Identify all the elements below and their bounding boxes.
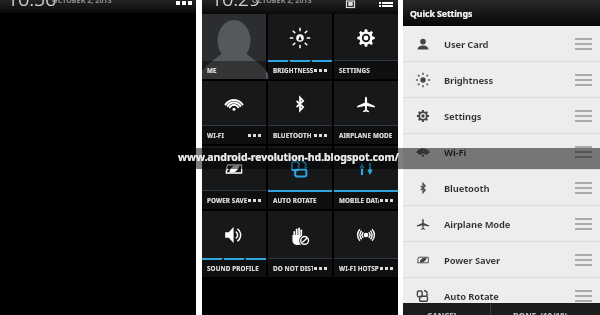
staticText: BLUETOOTH <box>273 131 313 140</box>
button[interactable]: BRIGHTNESS <box>268 14 332 79</box>
staticText: SETTINGS <box>339 66 395 75</box>
staticText: DONE (10/10) <box>513 310 568 315</box>
button[interactable]: Auto Rotate <box>402 278 600 314</box>
staticText: Settings <box>444 110 482 123</box>
button[interactable]: Settings <box>402 98 600 134</box>
button[interactable]: Airplane Mode <box>402 206 600 242</box>
button[interactable]: SOUND PROFILE <box>202 211 266 277</box>
staticText: Power Saver <box>444 254 501 267</box>
button[interactable]: Brightness <box>402 62 600 98</box>
button[interactable]: Power Saver <box>402 242 600 278</box>
staticText: WI-FI HOTSPOT <box>339 264 379 273</box>
button[interactable]: Bluetooth <box>402 170 600 206</box>
button[interactable]: AUTO ROTATE <box>268 146 332 209</box>
button[interactable]: BLUETOOTH <box>268 81 332 144</box>
staticText: Auto Rotate <box>444 290 499 303</box>
staticText: OCTOBER 2, 2013 <box>52 0 112 6</box>
button[interactable]: POWER SAVER <box>202 146 266 209</box>
staticText: AUTO ROTATE <box>273 196 329 205</box>
button[interactable]: MOBILE DATA <box>334 146 398 209</box>
staticText: www.android-revolution-hd.blogspot.com/ <box>178 150 399 164</box>
staticText: WI-FI <box>207 131 247 140</box>
button[interactable]: WI-FI HOTSPOT <box>334 211 398 277</box>
staticText: Airplane Mode <box>444 218 511 231</box>
staticText: Wi-Fi <box>444 146 467 159</box>
staticText: POWER SAVER <box>207 196 247 205</box>
staticText: Brightness <box>444 74 494 87</box>
button[interactable]: Screenshot <box>346 0 355 8</box>
staticText: ME <box>207 66 263 75</box>
staticText: AIRPLANE MODE <box>339 131 395 140</box>
staticText: OCTOBER 2, 2013 <box>252 0 312 6</box>
button[interactable]: More options <box>176 1 192 5</box>
button[interactable] <box>491 303 600 315</box>
staticText: MOBILE DATA <box>339 196 379 205</box>
staticText: BRIGHTNESS <box>273 66 313 75</box>
button[interactable]: User Card <box>402 26 600 62</box>
button[interactable]: WI-FI <box>202 81 266 144</box>
button[interactable]: SETTINGS <box>334 14 398 79</box>
button[interactable]: Wi-Fi <box>402 134 600 170</box>
staticText: 10:29 <box>211 0 261 12</box>
button[interactable]: Menu <box>379 0 393 7</box>
button[interactable] <box>402 303 490 315</box>
staticText: 10:56 <box>7 0 57 12</box>
button[interactable]: ME <box>202 14 266 79</box>
button[interactable]: DO NOT DISTURB <box>268 211 332 277</box>
staticText: Bluetooth <box>444 182 490 195</box>
button[interactable]: AIRPLANE MODE <box>334 81 398 144</box>
staticText: SOUND PROFILE <box>207 264 263 273</box>
staticText: Quick Settings <box>410 8 473 20</box>
staticText: CANCEL <box>427 310 459 315</box>
staticText: User Card <box>444 38 489 51</box>
staticText: DO NOT DISTURB <box>273 264 313 273</box>
